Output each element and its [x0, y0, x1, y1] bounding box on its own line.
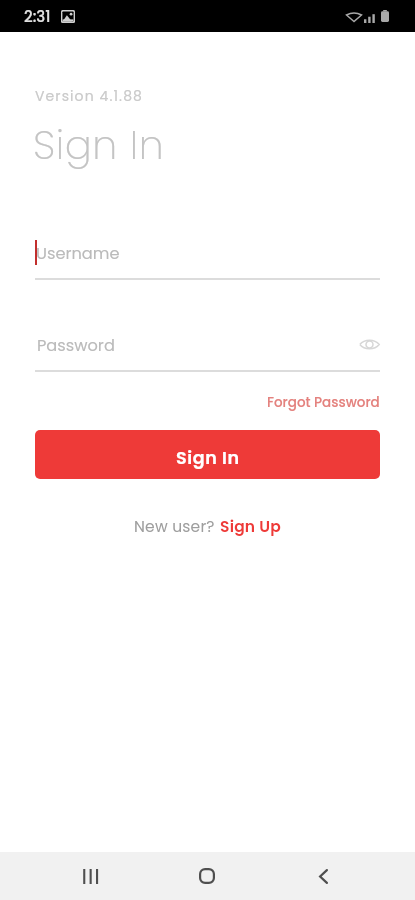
staticText: Version 4.1.88 [35, 86, 144, 106]
button[interactable]: Sign Up [220, 516, 281, 538]
staticText: Sign In [176, 446, 240, 471]
staticText: 2:31 [24, 6, 51, 27]
button[interactable]: Home [179, 852, 235, 900]
button[interactable]: Forgot Password [267, 393, 380, 412]
staticText: Password [37, 334, 115, 357]
button[interactable]: Username [35, 236, 380, 280]
button[interactable]: Recent apps [62, 852, 118, 900]
staticText: Sign In [33, 117, 165, 173]
button[interactable]: Back [295, 852, 351, 900]
staticText: Username [36, 242, 120, 265]
button[interactable]: Sign In [35, 430, 380, 479]
button[interactable]: Toggle password visibility [356, 331, 382, 357]
staticText: New user? [134, 516, 220, 538]
button[interactable]: Password [35, 328, 380, 372]
